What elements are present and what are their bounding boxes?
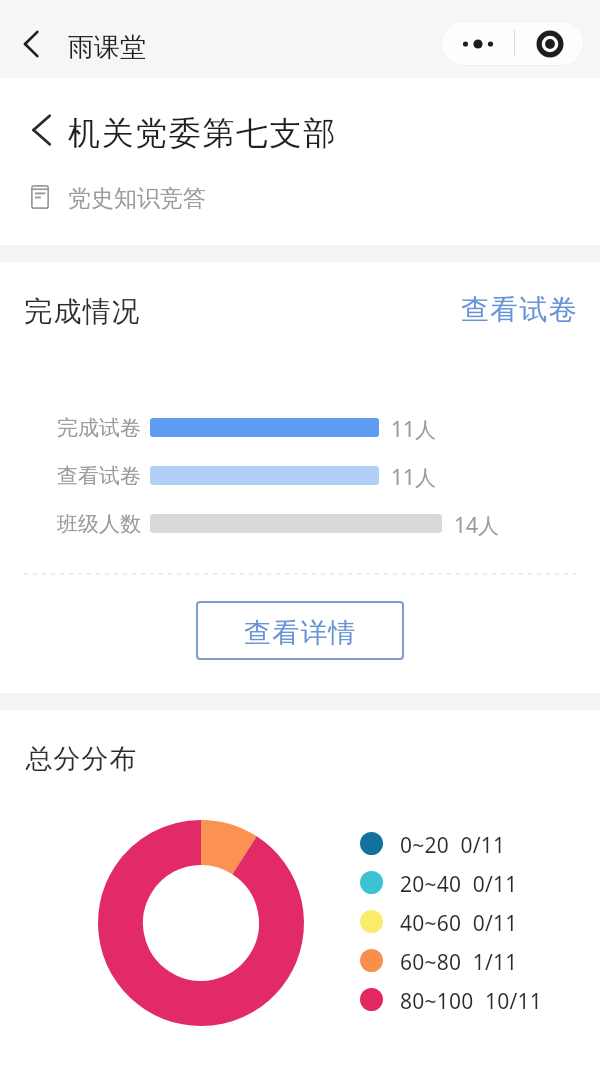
button[interactable]: Back to list bbox=[18, 106, 66, 154]
staticText: 查看试卷 bbox=[57, 463, 141, 489]
staticText: 完成试卷 bbox=[57, 415, 141, 441]
staticText: 党史知识竞答 bbox=[68, 184, 206, 213]
staticText: 班级人数 bbox=[57, 511, 141, 537]
staticText: 11人 bbox=[391, 415, 437, 444]
staticText: 11人 bbox=[391, 463, 437, 492]
staticText: 20~40 0/11 bbox=[400, 870, 518, 899]
staticText: 40~60 0/11 bbox=[400, 909, 518, 938]
staticText: 0~20 0/11 bbox=[400, 831, 506, 860]
staticText: 查看详情 bbox=[244, 616, 357, 650]
button[interactable]: Close mini program bbox=[515, 21, 584, 66]
staticText: 60~80 1/11 bbox=[400, 948, 518, 977]
button[interactable]: Back bbox=[9, 19, 59, 69]
staticText: 雨课堂 bbox=[68, 31, 146, 64]
button[interactable]: 查看详情 bbox=[196, 601, 404, 660]
button[interactable]: 查看试卷 bbox=[454, 286, 584, 332]
button[interactable]: More options bbox=[441, 21, 514, 66]
staticText: 完成情况 bbox=[24, 294, 141, 329]
staticText: 80~100 10/11 bbox=[400, 987, 543, 1016]
staticText: 总分分布 bbox=[25, 742, 137, 776]
staticText: 14人 bbox=[454, 511, 500, 540]
staticText: 查看试卷 bbox=[461, 292, 578, 327]
staticText: 机关党委第七支部 bbox=[68, 113, 337, 153]
